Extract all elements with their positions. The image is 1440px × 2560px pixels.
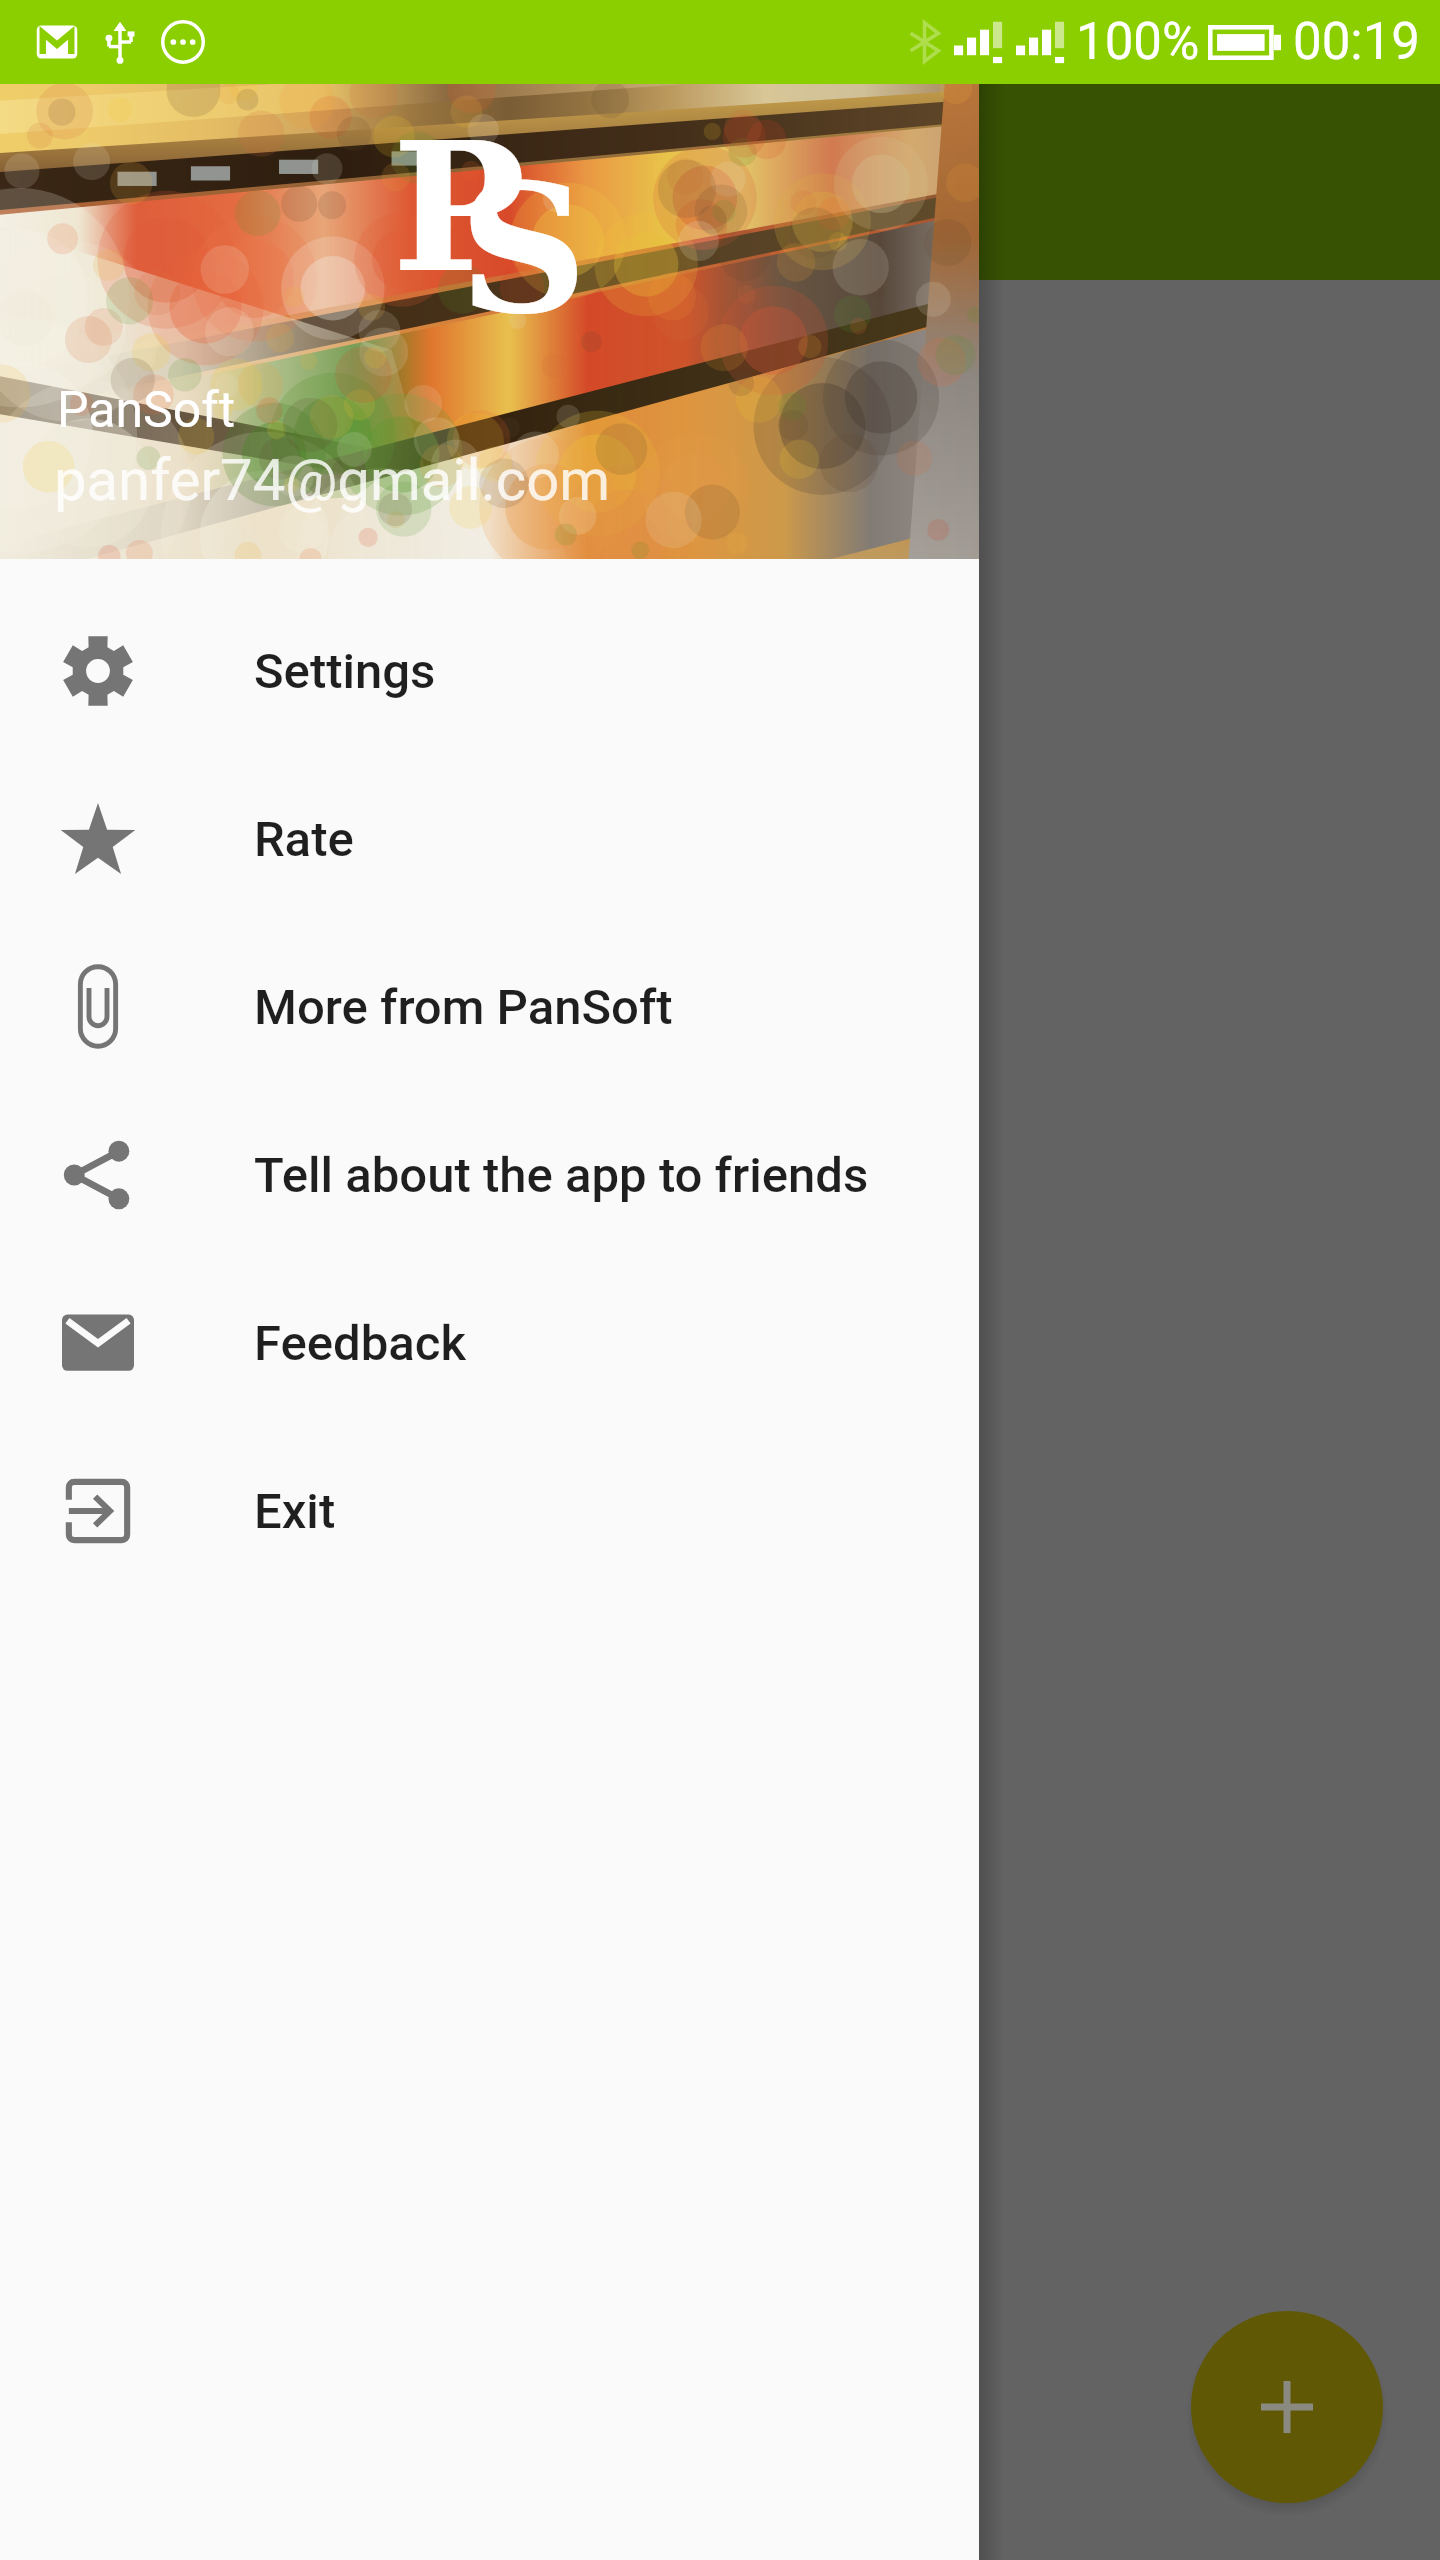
staticText: Tell about the app to friends (254, 1147, 869, 1204)
staticText: Rate (254, 811, 354, 868)
staticText: Exit (254, 1483, 336, 1540)
button[interactable]: Add (1191, 2311, 1383, 2503)
staticText: Feedback (254, 1315, 467, 1372)
button[interactable]: More from PanSoft (0, 923, 979, 1091)
button[interactable]: Rate (0, 755, 979, 923)
staticText: panfer74@gmail.com (54, 446, 611, 514)
staticText: P (392, 103, 526, 312)
button[interactable]: Exit (0, 1427, 979, 1595)
staticText: PanSoft (57, 381, 236, 440)
staticText: 00:19 (1293, 12, 1421, 72)
staticText: S (459, 144, 588, 353)
staticText: 100% (1076, 12, 1200, 72)
button[interactable]: Settings (0, 587, 979, 755)
staticText: More from PanSoft (254, 979, 673, 1036)
staticText: Settings (254, 643, 436, 700)
button[interactable]: PanSoft account panfer74@gmail.com (0, 84, 979, 559)
button[interactable]: Tell about the app to friends (0, 1091, 979, 1259)
button[interactable]: Feedback (0, 1259, 979, 1427)
